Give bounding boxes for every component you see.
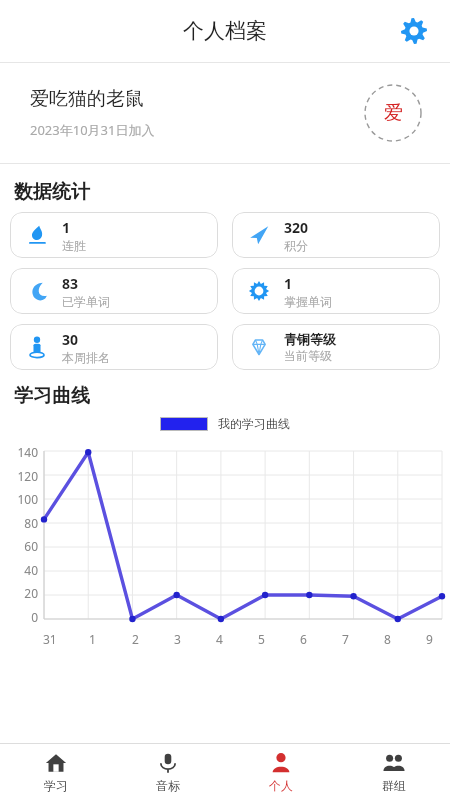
staticText: 当前等级 <box>284 348 332 363</box>
staticText: 学习 <box>44 778 68 793</box>
staticText: 连胜 <box>62 238 86 253</box>
button[interactable]: 青铜等级 <box>232 324 440 370</box>
button[interactable]: 30 <box>10 324 218 370</box>
staticText: 数据统计 <box>14 180 90 204</box>
button[interactable]: 1 <box>232 268 440 314</box>
staticText: 120 <box>4 468 38 484</box>
button[interactable]: 头像 <box>364 84 422 142</box>
button[interactable]: 音标 <box>112 744 224 800</box>
staticText: 60 <box>4 538 38 554</box>
staticText: 已学单词 <box>62 294 110 309</box>
button[interactable]: 1 <box>10 212 218 258</box>
staticText: 1 <box>284 274 293 293</box>
staticText: 本周排名 <box>62 350 110 365</box>
staticText: 青铜等级 <box>284 331 336 347</box>
staticText: 20 <box>4 585 38 601</box>
staticText: 31 <box>43 631 57 647</box>
staticText: 个人档案 <box>183 18 267 44</box>
staticText: 40 <box>4 562 38 578</box>
staticText: 1 <box>89 631 96 647</box>
staticText: 1 <box>62 218 71 237</box>
staticText: 5 <box>258 631 265 647</box>
staticText: 爱 <box>384 101 403 125</box>
staticText: 爱吃猫的老鼠 <box>30 87 144 111</box>
staticText: 100 <box>4 491 38 507</box>
button[interactable]: 设置 <box>394 11 434 51</box>
button[interactable]: 群组 <box>337 744 450 800</box>
staticText: 2023年10月31日加入 <box>30 121 155 139</box>
staticText: 9 <box>426 631 433 647</box>
staticText: 积分 <box>284 238 308 253</box>
staticText: 7 <box>342 631 349 647</box>
staticText: 80 <box>4 515 38 531</box>
staticText: 学习曲线 <box>14 384 90 408</box>
staticText: 0 <box>4 609 38 625</box>
staticText: 4 <box>216 631 223 647</box>
button[interactable]: 320 <box>232 212 440 258</box>
staticText: 30 <box>62 330 79 349</box>
staticText: 个人 <box>269 778 293 793</box>
staticText: 6 <box>300 631 307 647</box>
staticText: 群组 <box>382 778 406 793</box>
button[interactable]: 个人 <box>224 744 337 800</box>
staticText: 8 <box>384 631 391 647</box>
button[interactable]: 83 <box>10 268 218 314</box>
button[interactable]: 爱吃猫的老鼠 <box>0 63 450 163</box>
staticText: 320 <box>284 218 309 237</box>
staticText: 音标 <box>156 778 180 793</box>
staticText: 140 <box>4 444 38 460</box>
staticText: 83 <box>62 274 79 293</box>
button[interactable]: 学习 <box>0 744 112 800</box>
staticText: 3 <box>174 631 181 647</box>
staticText: 掌握单词 <box>284 294 332 309</box>
staticText: 2 <box>132 631 139 647</box>
staticText: 我的学习曲线 <box>218 416 290 431</box>
